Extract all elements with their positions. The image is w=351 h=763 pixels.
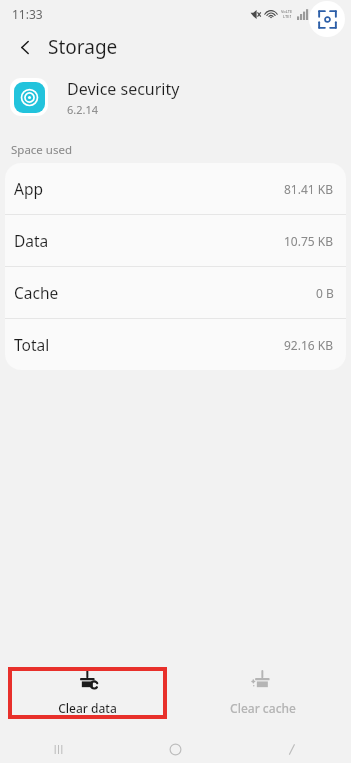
staticText: Data	[14, 230, 49, 251]
staticText: 0 B	[316, 285, 334, 301]
button[interactable]: Cache	[5, 267, 346, 319]
button[interactable]: Data	[5, 215, 346, 267]
button[interactable]: Recents	[0, 735, 117, 763]
staticText: 92.16 KB	[284, 337, 334, 353]
staticText: Clear cache	[230, 700, 296, 716]
button[interactable]: Clear data	[10, 669, 165, 717]
button[interactable]: Clear cache	[175, 669, 351, 717]
staticText: Total	[14, 334, 50, 355]
staticText: VoLTE	[281, 9, 293, 14]
button[interactable]: Back	[10, 32, 40, 62]
staticText: LTE1	[283, 14, 292, 19]
button[interactable]: Total	[5, 319, 346, 370]
staticText: Clear data	[58, 700, 117, 716]
button[interactable]: App	[5, 163, 346, 215]
staticText: 10.75 KB	[284, 233, 334, 249]
staticText: 6.2.14	[67, 102, 99, 117]
staticText: App	[14, 178, 43, 199]
button[interactable]: Scan	[309, 1, 345, 37]
staticText: 81.41 KB	[284, 181, 334, 197]
staticText: 11:33	[12, 6, 43, 22]
staticText: Cache	[14, 282, 59, 303]
staticText: Device security	[67, 78, 180, 100]
button[interactable]: Home	[117, 735, 234, 763]
staticText: Storage	[48, 34, 118, 60]
staticText: Space used	[11, 142, 73, 158]
